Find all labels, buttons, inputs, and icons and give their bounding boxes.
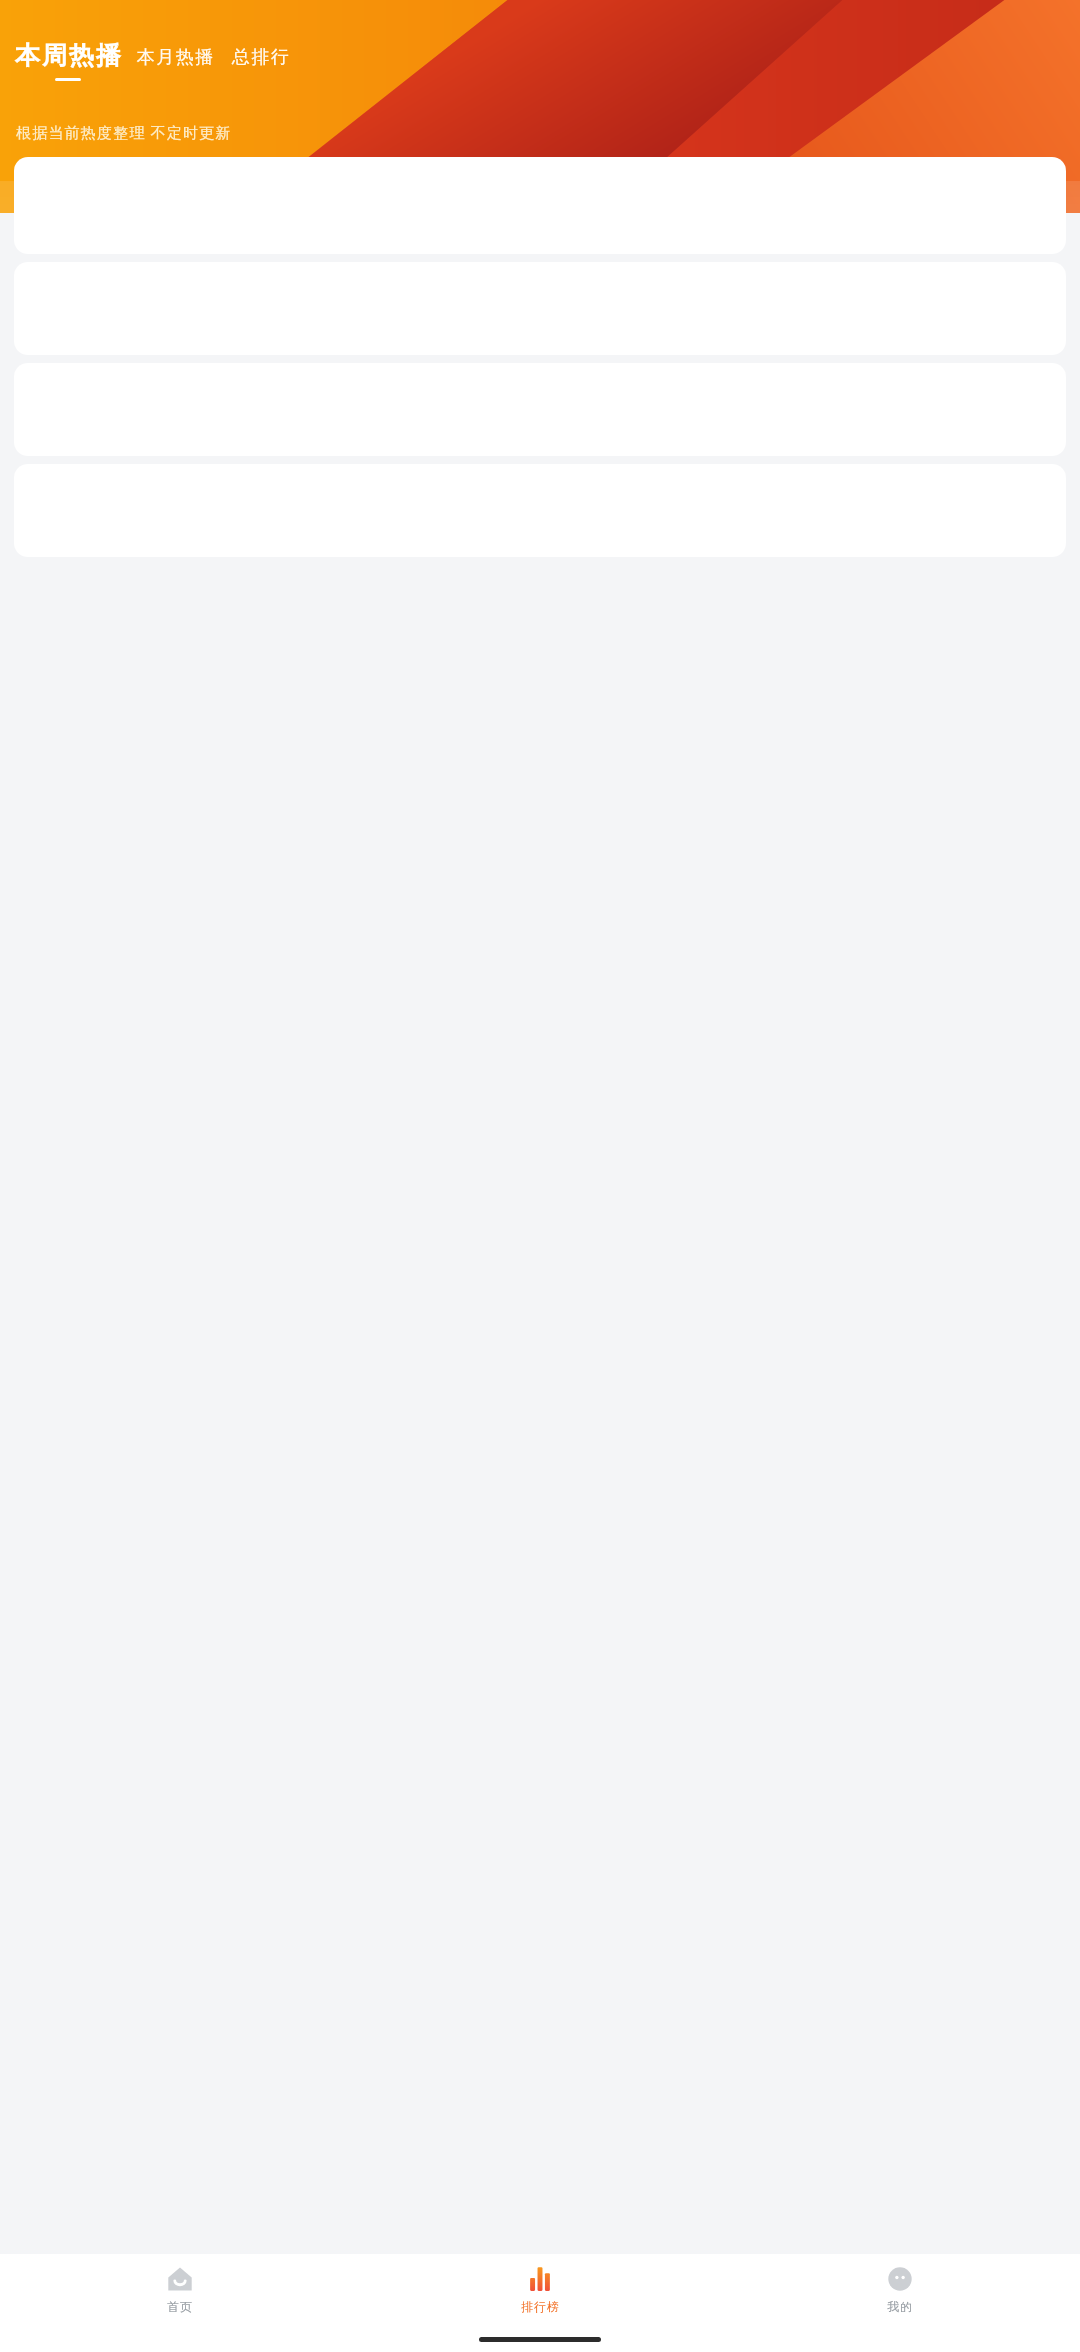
staticText: 总排行 bbox=[232, 46, 291, 69]
staticText: 根据当前热度整理 不定时更新 bbox=[16, 122, 232, 142]
staticText: 本月热播 bbox=[136, 46, 214, 69]
staticText: 我的 bbox=[887, 2299, 913, 2314]
button[interactable]: 我的 bbox=[720, 2254, 1080, 2326]
button[interactable]: 总排行 bbox=[232, 46, 291, 81]
other: 排行榜 bbox=[527, 2266, 553, 2292]
staticText: 首页 bbox=[167, 2299, 193, 2314]
other: 首页 bbox=[167, 2266, 193, 2292]
button[interactable] bbox=[14, 157, 1066, 254]
staticText: 本周热播 bbox=[14, 40, 122, 71]
button[interactable]: 排行榜 bbox=[360, 2254, 720, 2326]
button[interactable]: 本月热播 bbox=[136, 46, 214, 81]
button[interactable]: 本周热播 bbox=[14, 40, 122, 81]
button[interactable]: 首页 bbox=[0, 2254, 360, 2326]
staticText: 排行榜 bbox=[521, 2299, 560, 2314]
other: 我的 bbox=[887, 2266, 913, 2292]
